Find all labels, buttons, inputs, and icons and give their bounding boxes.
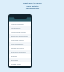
staticText: Best way to learn Real Estate Terminolog…: [23, 2, 42, 9]
staticText: Deed of trust: [11, 47, 24, 50]
staticText: Earnest money: [11, 51, 26, 54]
staticText: Escrow: [11, 59, 18, 62]
staticText: Equity: [11, 55, 18, 58]
button[interactable]: Closing costs: [9, 38, 31, 42]
button[interactable]: Amortization: [9, 22, 31, 26]
button[interactable]: Equity: [9, 54, 31, 58]
button[interactable]: Escrow: [9, 58, 31, 62]
staticText: Contingency: [11, 43, 24, 46]
button[interactable]: Appraisal: [9, 26, 31, 30]
button[interactable]: Assessed value: [9, 30, 31, 34]
button[interactable]: Fixed rate: [9, 62, 31, 66]
button[interactable]: Earnest money: [9, 50, 31, 54]
staticText: Amortization: [11, 23, 24, 26]
staticText: Appraisal: [11, 27, 21, 30]
button[interactable]: Deed of trust: [9, 46, 31, 50]
staticText: Balloon payment: [11, 35, 28, 38]
staticText: Assessed value: [11, 31, 26, 34]
button[interactable]: Balloon payment: [9, 34, 31, 38]
staticText: Fixed rate: [11, 63, 21, 66]
staticText: Closing costs: [11, 39, 24, 42]
button[interactable]: Contingency: [9, 42, 31, 46]
